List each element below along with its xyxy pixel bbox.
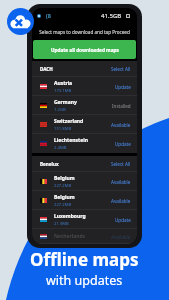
staticText: with updates [46, 272, 123, 289]
staticText: Update [115, 217, 131, 223]
button[interactable]: Germany [40, 96, 131, 115]
button[interactable]: Switzerland [40, 115, 131, 134]
staticText: Belgium [54, 194, 75, 201]
staticText: 151.8MB [54, 126, 72, 132]
staticText: 1.2GB [54, 107, 66, 113]
button[interactable]: Liechtenstein [40, 134, 131, 153]
staticText: DACH [40, 66, 53, 72]
staticText: Switzerland [54, 118, 84, 125]
staticText: Update [115, 84, 131, 90]
staticText: Liechtenstein [54, 137, 88, 144]
button[interactable]: Luxembourg [40, 210, 131, 229]
staticText: Austria [54, 80, 73, 87]
staticText: Update [115, 141, 131, 147]
staticText: Available [111, 122, 131, 128]
staticText: Belgium [54, 175, 75, 182]
button[interactable]: Austria [40, 77, 131, 96]
staticText: 173.1MB [54, 88, 72, 94]
staticText: 21.9MB [54, 221, 69, 227]
staticText: Netherlands [54, 233, 86, 240]
button[interactable]: Belgium [40, 172, 131, 191]
staticText: Select maps to download and tap Proceed [39, 29, 130, 35]
staticText: Germany [54, 99, 77, 106]
button[interactable]: Select All [111, 66, 131, 72]
staticText: 227.2MB [54, 202, 72, 208]
button[interactable]: Belgium [40, 191, 131, 210]
staticText: (8 [46, 12, 51, 19]
button[interactable]: Netherlands [40, 229, 131, 244]
staticText: 2.4MB [54, 145, 67, 151]
staticText: 227.2MB [54, 183, 72, 189]
staticText: Available [111, 198, 131, 204]
button[interactable]: Update all downloaded maps [33, 40, 136, 59]
staticText: Installed [112, 103, 131, 109]
button[interactable]: Offline [7, 8, 34, 35]
staticText: Available [111, 234, 131, 240]
staticText: Luxembourg [54, 213, 86, 220]
staticText: Update all downloaded maps [51, 47, 119, 53]
staticText: Benelux [40, 161, 59, 167]
staticText: Available [111, 179, 131, 185]
staticText: Offline maps [30, 248, 139, 271]
button[interactable]: Select All [111, 161, 131, 167]
staticText: 41.5GB [101, 12, 122, 20]
